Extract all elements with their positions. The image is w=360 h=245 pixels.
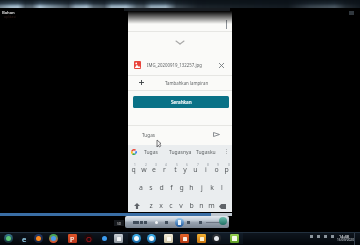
staticText: t: [174, 165, 177, 174]
staticText: m: [208, 201, 215, 210]
staticText: c: [169, 201, 173, 210]
button[interactable]: q: [128, 161, 138, 178]
button[interactable]: z: [146, 197, 156, 214]
other: Google: [131, 149, 137, 155]
button[interactable]: d: [156, 179, 166, 196]
other: Send: [213, 132, 220, 137]
button[interactable]: x: [156, 197, 166, 214]
staticText: u: [193, 165, 198, 174]
staticText: k: [210, 183, 214, 192]
button[interactable]: l: [217, 179, 227, 196]
button[interactable]: s: [146, 179, 156, 196]
button[interactable]: t: [170, 161, 180, 178]
button[interactable]: Taskbar app: [84, 234, 93, 243]
staticText: l: [221, 183, 223, 192]
button[interactable]: e: [149, 161, 159, 178]
button[interactable]: b: [186, 197, 196, 214]
button[interactable]: Taskbar app: [212, 234, 221, 243]
button[interactable]: Volume: [219, 217, 227, 225]
staticText: 9: [217, 163, 219, 167]
staticText: 3: [155, 163, 157, 167]
button[interactable]: Taskbar app: [132, 234, 141, 243]
button[interactable]: f: [166, 179, 176, 196]
staticText: i: [205, 165, 207, 174]
staticText: aplikasi: [4, 14, 16, 19]
button[interactable]: Tugas: [139, 145, 163, 159]
staticText: h: [189, 183, 194, 192]
staticText: 0: [228, 163, 230, 167]
staticText: Tugasku: [196, 149, 216, 156]
button[interactable]: j: [197, 179, 207, 196]
staticText: n: [199, 201, 204, 210]
button[interactable]: Backspace: [217, 201, 227, 211]
staticText: 8: [207, 163, 209, 167]
button[interactable]: Collapse: [172, 37, 188, 47]
button[interactable]: Tugas: [128, 126, 232, 145]
button[interactable]: n: [196, 197, 206, 214]
button[interactable]: Tambahkan lampiran: [128, 75, 232, 90]
button[interactable]: w: [139, 161, 149, 178]
staticText: r: [163, 165, 166, 174]
button[interactable]: Taskbar app: [19, 234, 29, 244]
button[interactable]: Taskbar app: [34, 234, 43, 243]
button[interactable]: Tugasku: [194, 145, 218, 159]
button[interactable]: Taskbar app: [100, 234, 109, 243]
button[interactable]: h: [186, 179, 196, 196]
button[interactable]: Taskbar app: [164, 234, 173, 243]
button[interactable]: Taskbar app: [114, 234, 123, 243]
staticText: y: [183, 165, 187, 174]
button[interactable]: y: [180, 161, 190, 178]
button[interactable]: Taskbar app: [147, 234, 156, 243]
button[interactable]: Taskbar app: [49, 234, 58, 243]
staticText: 1: [134, 163, 136, 167]
staticText: Bahan: [2, 10, 15, 16]
button[interactable]: Taskbar app: [230, 234, 239, 243]
button[interactable]: a: [136, 179, 146, 196]
staticText: 5: [176, 163, 178, 167]
staticText: 14:48: [339, 234, 349, 239]
button[interactable]: c: [166, 197, 176, 214]
staticText: b: [189, 201, 194, 210]
button[interactable]: m: [206, 197, 216, 214]
staticText: IMG_20200919_132257.jpg: [147, 62, 202, 68]
button[interactable]: Shift: [132, 201, 142, 211]
button[interactable]: Taskbar app: [4, 234, 13, 243]
button[interactable]: o: [211, 161, 221, 178]
button[interactable]: Serahkan: [133, 96, 229, 108]
staticText: s: [149, 183, 153, 192]
staticText: 16/09/2020: [337, 238, 354, 242]
button[interactable]: i: [201, 161, 211, 178]
button[interactable]: Taskbar app: [180, 234, 189, 243]
staticText: g: [179, 183, 184, 192]
staticText: Tugas: [144, 149, 158, 156]
staticText: Tugas: [142, 132, 156, 138]
button[interactable]: IMG_20200919_132257.jpg: [128, 57, 232, 75]
button[interactable]: Play: [175, 218, 184, 227]
button[interactable]: g: [176, 179, 186, 196]
button[interactable]: Taskbar app: [197, 234, 206, 243]
staticText: w: [141, 165, 147, 174]
button[interactable]: v: [176, 197, 186, 214]
button[interactable]: k: [207, 179, 217, 196]
button[interactable]: Taskbar app: [68, 234, 77, 243]
button[interactable]: u: [190, 161, 200, 178]
button[interactable]: Tugasnya: [168, 145, 192, 159]
staticText: 4: [165, 163, 167, 167]
staticText: 7: [197, 163, 199, 167]
button[interactable]: r: [159, 161, 169, 178]
staticText: Tambahkan lampiran: [165, 80, 209, 86]
staticText: a: [139, 183, 143, 192]
staticText: v: [179, 201, 183, 210]
button[interactable]: p: [221, 161, 231, 178]
